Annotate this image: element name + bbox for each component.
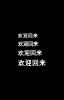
staticText: 欢迎回来: [18, 59, 46, 67]
staticText: 欢迎回来: [18, 41, 38, 47]
staticText: 欢迎回来: [18, 33, 38, 39]
staticText: 欢迎回来: [18, 49, 42, 57]
